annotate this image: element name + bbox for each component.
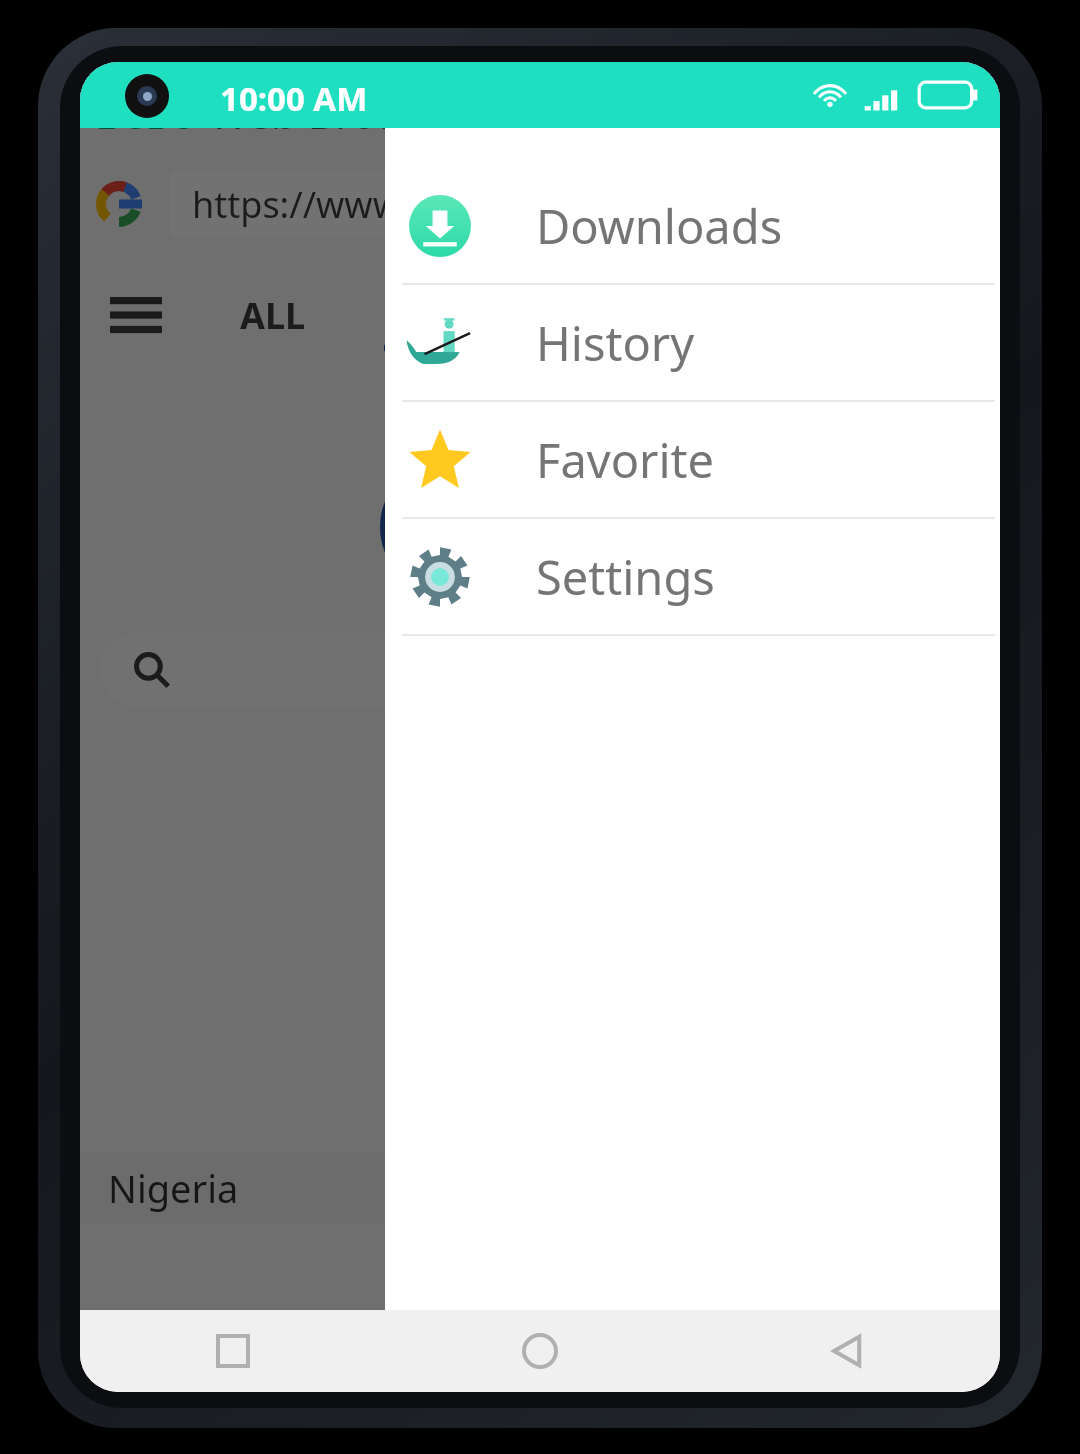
staticText: Fore [98,84,195,141]
button[interactable]: Favorite [385,402,1000,517]
staticText: ALL [240,291,306,340]
button[interactable]: Home [386,1310,693,1392]
staticText: 10:00 AM [220,76,368,121]
staticText: Nigeria [108,1162,239,1214]
staticText: History [536,311,695,375]
staticText: Settings [536,545,715,609]
staticText: Web Browser [209,84,471,141]
button[interactable]: Downloads [385,128,1000,283]
staticText: IMAGES [390,280,529,329]
button[interactable]: Recent apps [80,1310,386,1392]
button[interactable]: Settings [385,519,1000,634]
button[interactable]: Back [693,1310,1000,1392]
staticText: Downloads [536,194,783,258]
staticText: Favorite [536,428,715,492]
staticText: https://www.google.com [192,180,609,229]
button[interactable]: History [385,285,1000,400]
